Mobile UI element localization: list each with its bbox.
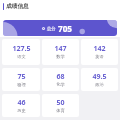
- staticText: 127.5: [12, 43, 31, 53]
- staticText: 数学: [56, 54, 65, 59]
- staticText: 75: [17, 71, 26, 81]
- staticText: 体育: [56, 108, 65, 113]
- button[interactable]: 75: [2, 68, 40, 91]
- staticText: 物理: [17, 82, 26, 87]
- staticText: 50: [56, 97, 65, 107]
- staticText: 总分: [47, 26, 56, 31]
- button[interactable]: 49.5: [81, 68, 118, 91]
- staticText: 68: [56, 71, 65, 81]
- button[interactable]: 142: [81, 39, 118, 65]
- staticText: 142: [93, 43, 106, 53]
- staticText: 英语: [95, 54, 104, 59]
- button[interactable]: 147: [42, 39, 79, 65]
- staticText: 成绩信息: [6, 3, 29, 10]
- staticText: 46: [17, 97, 26, 107]
- staticText: 化学: [56, 82, 65, 87]
- button[interactable]: 68: [42, 68, 79, 91]
- staticText: 147: [54, 43, 67, 53]
- staticText: 49.5: [92, 71, 107, 81]
- button[interactable]: 50: [42, 94, 79, 117]
- button[interactable]: 46: [2, 94, 40, 117]
- button[interactable]: 127.5: [2, 39, 40, 65]
- staticText: 历史: [17, 108, 26, 113]
- staticText: 705: [58, 23, 73, 34]
- staticText: 语文: [17, 54, 26, 59]
- staticText: 政治: [95, 82, 104, 87]
- button[interactable]: 总分: [3, 20, 117, 36]
